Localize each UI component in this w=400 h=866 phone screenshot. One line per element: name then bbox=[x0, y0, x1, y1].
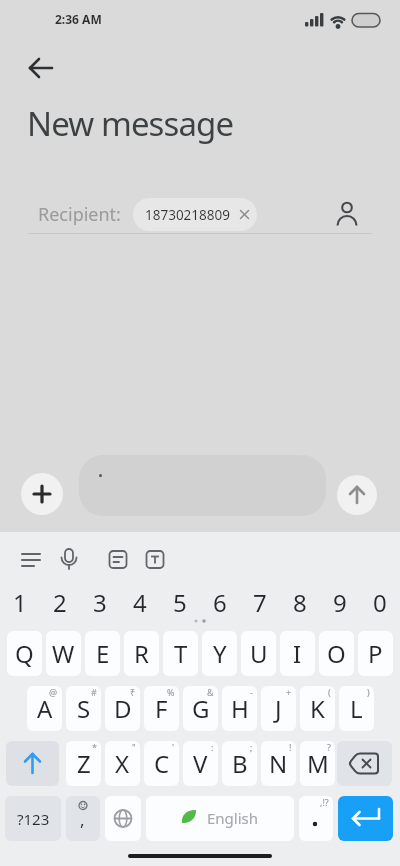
button[interactable]: ,!? bbox=[299, 796, 333, 841]
button[interactable]: 18730218809 bbox=[133, 198, 257, 231]
staticText: 2:36 AM bbox=[55, 11, 102, 27]
button[interactable]: O bbox=[319, 631, 354, 676]
button[interactable]: 5 bbox=[160, 586, 200, 618]
button[interactable]: 2 bbox=[40, 586, 80, 618]
staticText: # bbox=[91, 686, 97, 698]
staticText: 1 bbox=[13, 586, 27, 618]
button[interactable]: K bbox=[300, 686, 335, 731]
staticText: ; bbox=[250, 741, 253, 753]
button[interactable]: C bbox=[144, 741, 179, 786]
staticText: P bbox=[368, 637, 383, 670]
button[interactable] bbox=[138, 544, 172, 576]
button[interactable]: Y bbox=[202, 631, 237, 676]
staticText: 3 bbox=[93, 586, 107, 618]
staticText: ( bbox=[328, 686, 331, 698]
button[interactable] bbox=[101, 544, 135, 576]
button[interactable] bbox=[6, 741, 59, 786]
button[interactable]: U bbox=[241, 631, 276, 676]
button[interactable]: 9 bbox=[320, 586, 360, 618]
staticText: S bbox=[77, 692, 91, 725]
staticText: 4 bbox=[133, 586, 147, 618]
button[interactable]: B bbox=[222, 741, 257, 786]
staticText: Y bbox=[213, 637, 227, 670]
staticText: 6 bbox=[213, 586, 227, 618]
button[interactable]: E bbox=[85, 631, 120, 676]
staticText: J bbox=[275, 692, 282, 725]
staticText: U bbox=[250, 637, 268, 670]
staticText: D bbox=[114, 692, 132, 725]
button[interactable]: M bbox=[300, 741, 335, 786]
button[interactable] bbox=[337, 741, 392, 786]
staticText: 18730218809 bbox=[145, 206, 230, 224]
staticText: X bbox=[115, 747, 130, 780]
staticText: R bbox=[134, 637, 149, 670]
button[interactable]: , bbox=[66, 796, 100, 841]
staticText: H bbox=[231, 692, 249, 725]
staticText: New message bbox=[27, 101, 234, 146]
staticText: ?123 bbox=[17, 809, 50, 829]
button[interactable] bbox=[22, 50, 58, 86]
button[interactable]: 0 bbox=[360, 586, 400, 618]
button[interactable]: R bbox=[124, 631, 159, 676]
staticText: I bbox=[293, 637, 302, 670]
staticText: E bbox=[96, 637, 110, 670]
button[interactable]: Q bbox=[7, 631, 42, 676]
button[interactable] bbox=[52, 544, 86, 576]
button[interactable]: English bbox=[146, 796, 294, 841]
button[interactable] bbox=[337, 475, 377, 515]
staticText: C bbox=[154, 747, 170, 780]
button[interactable]: 6 bbox=[200, 586, 240, 618]
staticText: 0 bbox=[373, 586, 387, 618]
staticText: ? bbox=[327, 741, 331, 753]
staticText: English bbox=[207, 808, 259, 828]
button[interactable]: F bbox=[144, 686, 179, 731]
staticText: ) bbox=[367, 686, 370, 698]
button[interactable]: Z bbox=[66, 741, 101, 786]
button[interactable] bbox=[105, 796, 141, 841]
staticText: 7 bbox=[253, 586, 267, 618]
button[interactable]: W bbox=[46, 631, 81, 676]
staticText: - bbox=[250, 686, 253, 698]
button[interactable]: 4 bbox=[120, 586, 160, 618]
button[interactable]: V bbox=[183, 741, 218, 786]
button[interactable]: 8 bbox=[280, 586, 320, 618]
staticText: M bbox=[307, 747, 329, 780]
staticText: W bbox=[52, 637, 75, 670]
staticText: ! bbox=[289, 741, 292, 753]
staticText: B bbox=[232, 747, 248, 780]
button[interactable]: J bbox=[261, 686, 296, 731]
staticText: K bbox=[310, 692, 325, 725]
staticText: ,!? bbox=[320, 796, 329, 808]
staticText: & bbox=[207, 686, 214, 698]
button[interactable] bbox=[14, 544, 48, 576]
button[interactable] bbox=[338, 796, 393, 841]
button[interactable] bbox=[21, 473, 63, 515]
button[interactable]: D bbox=[105, 686, 140, 731]
button[interactable]: L bbox=[339, 686, 374, 731]
staticText: N bbox=[269, 747, 288, 780]
button[interactable]: H bbox=[222, 686, 257, 731]
button[interactable]: ?123 bbox=[5, 796, 61, 841]
button[interactable]: G bbox=[183, 686, 218, 731]
button[interactable]: P bbox=[358, 631, 393, 676]
staticText: % bbox=[167, 686, 175, 698]
staticText: * bbox=[92, 741, 97, 753]
button[interactable]: S bbox=[66, 686, 101, 731]
staticText: G bbox=[192, 692, 210, 725]
staticText: ' bbox=[172, 741, 175, 753]
button[interactable]: T bbox=[163, 631, 198, 676]
button[interactable]: N bbox=[261, 741, 296, 786]
staticText: O bbox=[327, 637, 346, 670]
button[interactable]: 3 bbox=[80, 586, 120, 618]
button[interactable]: 7 bbox=[240, 586, 280, 618]
staticText: 8 bbox=[293, 586, 307, 618]
staticText: V bbox=[193, 747, 208, 780]
button[interactable]: 1 bbox=[0, 586, 40, 618]
button[interactable]: X bbox=[105, 741, 140, 786]
button[interactable]: A bbox=[27, 686, 62, 731]
button[interactable]: I bbox=[280, 631, 315, 676]
staticText: Z bbox=[77, 747, 91, 780]
staticText: , bbox=[80, 808, 85, 831]
button[interactable] bbox=[330, 198, 364, 230]
